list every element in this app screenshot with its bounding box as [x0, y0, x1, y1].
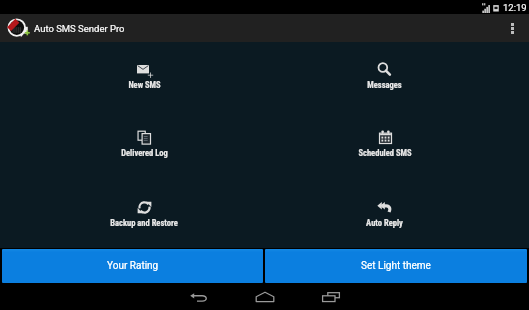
button[interactable]: Delivered Log [109, 129, 180, 159]
button[interactable]: New SMS [116, 61, 173, 91]
button[interactable]: Recent apps [311, 284, 351, 310]
staticText: Backup and Restore [110, 218, 178, 228]
button[interactable]: Your Rating [2, 249, 263, 283]
staticText: Scheduled SMS [358, 148, 412, 158]
button[interactable]: More options [495, 14, 529, 42]
staticText: Delivered Log [121, 148, 168, 158]
button[interactable]: Home [245, 284, 285, 310]
button[interactable]: Back [179, 284, 219, 310]
button[interactable]: Auto Reply [354, 199, 415, 229]
staticText: Messages [367, 80, 402, 90]
staticText: New SMS [128, 80, 161, 90]
staticText: Auto SMS Sender Pro [34, 23, 125, 34]
staticText: Your Rating [107, 260, 159, 272]
button[interactable]: Messages [355, 61, 414, 91]
staticText: Set Light theme [361, 260, 431, 272]
button[interactable]: Backup and Restore [98, 199, 190, 229]
staticText: 12:19 [503, 2, 527, 13]
staticText: Auto Reply [366, 218, 403, 228]
button[interactable]: Set Light theme [265, 249, 527, 283]
button[interactable]: Scheduled SMS [346, 129, 424, 159]
